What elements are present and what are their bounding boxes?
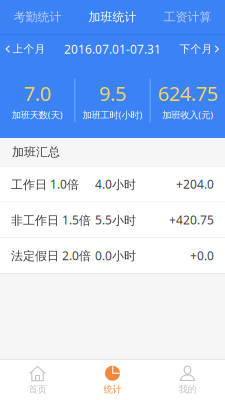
staticText: 2016.07.01-07.31: [64, 41, 161, 57]
staticText: 加班收入(元): [162, 109, 213, 121]
staticText: +0.0: [190, 248, 214, 263]
staticText: 加班工时(小时): [82, 109, 142, 121]
staticText: 下个月: [179, 42, 212, 55]
button[interactable]: 法定假日 2.0倍: [0, 238, 225, 273]
button[interactable]: 下个月: [175, 36, 225, 62]
button[interactable]: 工作日 1.0倍: [0, 167, 225, 202]
staticText: +204.0: [176, 176, 214, 192]
button[interactable]: 非工作日 1.5倍: [0, 202, 225, 237]
button[interactable]: 我的: [150, 360, 225, 400]
staticText: 考勤统计: [13, 10, 61, 24]
staticText: 5.5小时: [95, 212, 136, 228]
staticText: 上个月: [12, 42, 45, 55]
button[interactable]: 上个月: [0, 36, 50, 62]
staticText: 工作日 1.0倍: [11, 176, 79, 192]
staticText: 7.0: [24, 80, 51, 107]
staticText: 我的: [178, 384, 196, 395]
button[interactable]: 考勤统计: [0, 0, 75, 34]
staticText: 加班天数(天): [12, 109, 63, 121]
staticText: +420.75: [169, 212, 214, 228]
staticText: 加班汇总: [12, 145, 60, 159]
staticText: 4.0小时: [95, 176, 136, 192]
staticText: 非工作日 1.5倍: [11, 212, 91, 228]
button[interactable]: 首页: [0, 360, 75, 400]
staticText: 9.5: [99, 80, 126, 107]
staticText: 0.0小时: [95, 248, 136, 263]
staticText: 法定假日 2.0倍: [11, 248, 91, 263]
staticText: 首页: [28, 384, 46, 395]
staticText: 统计: [103, 384, 121, 395]
staticText: 工资计算: [163, 10, 211, 24]
staticText: 加班统计: [88, 10, 136, 24]
button[interactable]: 统计: [75, 360, 150, 400]
staticText: 624.75: [158, 80, 218, 107]
button[interactable]: 加班统计: [75, 0, 150, 34]
button[interactable]: 工资计算: [150, 0, 225, 34]
